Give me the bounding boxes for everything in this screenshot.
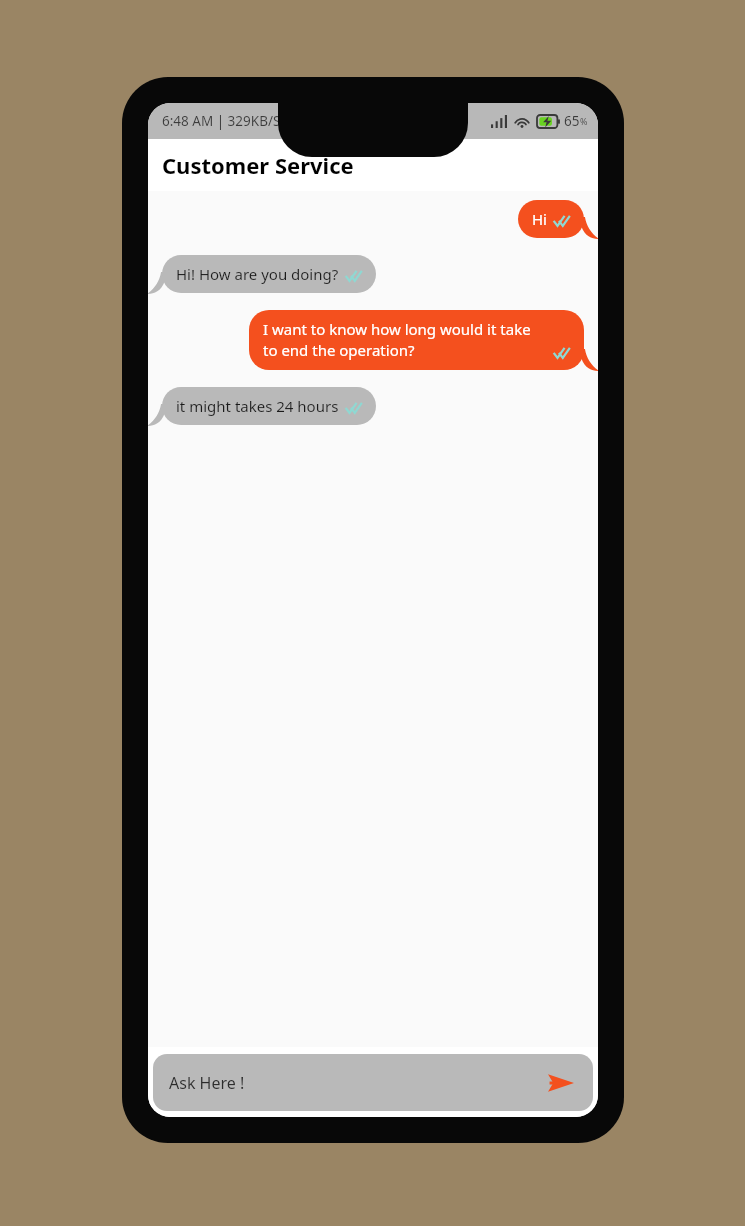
- staticText: I want to know how long would it take to…: [263, 319, 547, 361]
- button[interactable]: Hi: [148, 200, 584, 238]
- button[interactable]: Send: [545, 1067, 577, 1099]
- staticText: Hi: [532, 209, 547, 229]
- staticText: 65: [564, 112, 580, 130]
- staticText: 6:48 AM | 329KB/S: [162, 112, 281, 130]
- button[interactable]: Hi! How are you doing?: [162, 255, 598, 293]
- staticText: Customer Service: [162, 150, 354, 180]
- button[interactable]: Ask Here !: [153, 1054, 593, 1111]
- button[interactable]: I want to know how long would it take to…: [148, 310, 584, 370]
- button[interactable]: it might takes 24 hours: [162, 387, 598, 425]
- staticText: it might takes 24 hours: [176, 396, 339, 416]
- staticText: Ask Here !: [169, 1072, 245, 1094]
- staticText: Hi! How are you doing?: [176, 264, 339, 284]
- staticText: %: [580, 115, 588, 127]
